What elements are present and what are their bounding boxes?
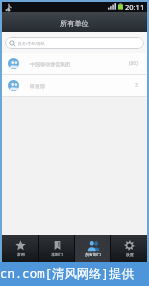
staticText: 所有部门 — [85, 252, 101, 257]
staticText: 所有单位 — [60, 19, 89, 28]
button[interactable]: 设置 — [111, 235, 147, 262]
button[interactable]: 姓名/手机/座机 — [5, 37, 144, 49]
button[interactable]: 中国移动通信集团 — [2, 53, 147, 75]
staticText: 姓名/手机/座机 — [18, 41, 45, 46]
staticText: 20:11 — [125, 2, 145, 12]
staticText: cn.com[清风网络]提供 — [0, 265, 134, 282]
button[interactable]: 本部门 — [39, 235, 75, 262]
staticText: (86) — [129, 60, 138, 67]
staticText: 常用 — [17, 252, 25, 257]
staticText: 中国移动通信集团 — [30, 61, 70, 67]
staticText: 研发部 — [30, 83, 45, 89]
staticText: 设置 — [126, 252, 134, 257]
staticText: 3 — [135, 82, 138, 89]
button[interactable]: 所有部门 — [75, 235, 111, 262]
button[interactable]: 常用 — [2, 235, 39, 262]
button[interactable]: 研发部 — [2, 75, 147, 97]
staticText: 本部门 — [51, 252, 63, 257]
